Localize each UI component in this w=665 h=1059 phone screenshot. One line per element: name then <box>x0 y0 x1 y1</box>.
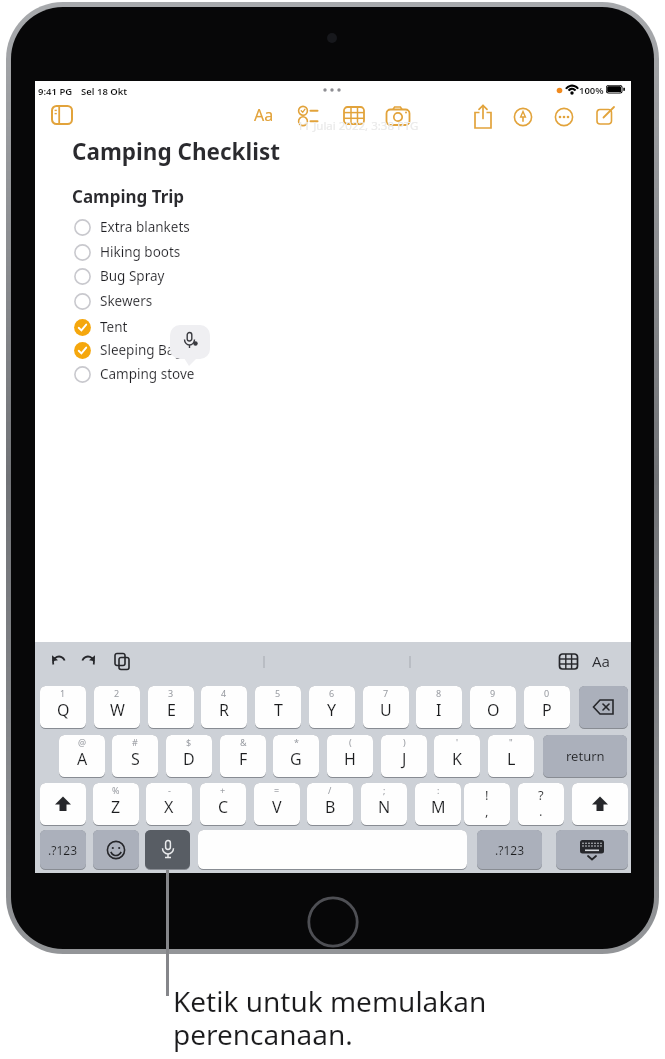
staticText: X <box>164 796 174 818</box>
button[interactable]: Aa <box>254 104 280 126</box>
button[interactable]: Bug Spray <box>67 264 297 288</box>
button[interactable]: - <box>146 783 192 825</box>
button[interactable]: ( <box>327 735 373 777</box>
button[interactable]: 8 <box>416 686 462 728</box>
button[interactable]: + <box>200 783 246 825</box>
staticText: Camping Checklist <box>72 136 281 167</box>
staticText: ) <box>403 736 406 748</box>
staticText: 5 <box>275 687 281 699</box>
button[interactable] <box>386 106 411 126</box>
button[interactable]: Hiking boots <box>67 240 297 264</box>
staticText: & <box>240 736 247 748</box>
staticText: N <box>378 796 391 818</box>
staticText: / <box>328 784 332 796</box>
button[interactable]: / <box>307 783 353 825</box>
staticText: P <box>542 699 552 721</box>
button[interactable] <box>93 830 139 869</box>
staticText: Aa <box>592 651 611 671</box>
staticText: - <box>168 784 171 796</box>
staticText: M <box>431 796 446 818</box>
staticText: W <box>110 699 125 721</box>
button[interactable]: ) <box>381 735 427 777</box>
button[interactable] <box>145 830 190 869</box>
button[interactable] <box>198 830 467 869</box>
staticText: Camping Trip <box>72 185 185 208</box>
button[interactable]: ' <box>434 735 480 777</box>
button[interactable]: ? <box>518 783 564 825</box>
button[interactable]: 4 <box>201 686 247 728</box>
button[interactable] <box>472 104 494 130</box>
staticText: .?123 <box>495 842 525 858</box>
button[interactable] <box>513 107 533 127</box>
staticText: 1 <box>60 687 66 699</box>
button[interactable]: Camping stove <box>67 362 297 386</box>
button[interactable]: Tent <box>67 315 297 339</box>
button[interactable]: return <box>543 735 627 777</box>
staticText: L <box>507 748 516 770</box>
button[interactable]: : <box>415 783 461 825</box>
staticText: , <box>485 802 489 820</box>
button[interactable]: 1 <box>40 686 86 728</box>
staticText: K <box>452 748 462 770</box>
button[interactable]: * <box>273 735 319 777</box>
button[interactable]: 7 <box>363 686 409 728</box>
button[interactable]: 6 <box>309 686 355 728</box>
button[interactable]: = <box>254 783 300 825</box>
button[interactable] <box>572 783 628 825</box>
staticText: @ <box>78 736 87 748</box>
button[interactable]: 9 <box>470 686 516 728</box>
staticText: " <box>509 736 513 748</box>
button[interactable]: Extra blankets <box>67 215 297 239</box>
staticText: D <box>183 748 195 770</box>
staticText: F <box>239 748 248 770</box>
staticText: $ <box>186 736 192 748</box>
staticText: Skewers <box>100 292 153 310</box>
staticText: R <box>219 699 229 721</box>
staticText: H <box>344 748 356 770</box>
button[interactable]: $ <box>166 735 212 777</box>
button[interactable] <box>298 106 320 126</box>
staticText: V <box>272 796 282 818</box>
button[interactable] <box>556 830 628 869</box>
staticText: ' <box>456 736 459 748</box>
staticText: O <box>487 699 500 721</box>
staticText: % <box>112 784 120 796</box>
button[interactable]: Skewers <box>67 289 297 313</box>
button[interactable]: & <box>220 735 266 777</box>
staticText: # <box>132 736 138 748</box>
button[interactable]: 5 <box>255 686 301 728</box>
staticText: * <box>294 736 299 748</box>
button[interactable]: 3 <box>148 686 194 728</box>
staticText: Hiking boots <box>100 243 181 261</box>
button[interactable]: " <box>488 735 534 777</box>
staticText: 8 <box>436 687 442 699</box>
staticText: 3 <box>168 687 174 699</box>
staticText: J <box>402 748 407 770</box>
staticText: ? <box>538 786 544 804</box>
button[interactable]: ! <box>464 783 510 825</box>
staticText: .?123 <box>48 842 78 858</box>
staticText: 6 <box>329 687 335 699</box>
button[interactable] <box>554 107 574 127</box>
button[interactable] <box>51 105 75 127</box>
button[interactable] <box>40 783 86 825</box>
button[interactable]: .?123 <box>40 830 86 869</box>
staticText: Bug Spray <box>100 267 165 285</box>
staticText: 9:41 PG <box>38 85 73 98</box>
staticText: return <box>566 747 605 765</box>
button[interactable]: 0 <box>524 686 570 728</box>
button[interactable] <box>579 686 628 728</box>
staticText: Y <box>327 699 337 721</box>
button[interactable]: @ <box>59 735 105 777</box>
button[interactable] <box>596 106 618 128</box>
staticText: = <box>274 784 280 796</box>
button[interactable]: % <box>93 783 139 825</box>
button[interactable] <box>343 106 365 126</box>
button[interactable]: # <box>112 735 158 777</box>
staticText: 11 Julai 2022, 3:38 PTG <box>297 118 419 134</box>
button[interactable]: ; <box>361 783 407 825</box>
staticText: E <box>167 699 176 721</box>
button[interactable]: Sleeping Bag <box>67 338 297 362</box>
button[interactable]: 2 <box>94 686 140 728</box>
button[interactable]: .?123 <box>477 830 542 869</box>
